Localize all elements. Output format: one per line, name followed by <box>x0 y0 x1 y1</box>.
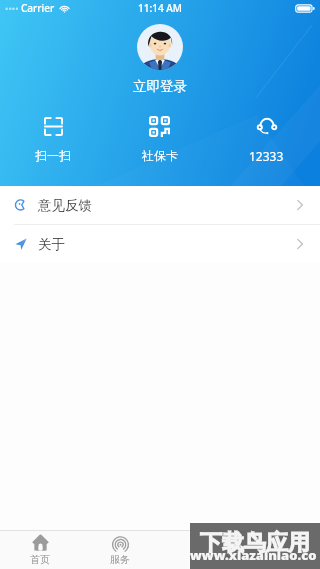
other: 社保卡 <box>149 116 170 136</box>
button[interactable]: 12333 <box>213 114 320 166</box>
staticText: •••• <box>5 2 19 14</box>
staticText: 首页 <box>30 553 50 566</box>
staticText: 服务 <box>110 553 130 566</box>
button[interactable]: 关于 <box>0 225 320 263</box>
staticText: 下载鸟应用 <box>200 529 310 557</box>
other: 扫一扫 <box>44 117 63 136</box>
button[interactable]: 扫一扫 <box>0 114 106 165</box>
staticText: 扫一扫 <box>35 148 71 163</box>
button[interactable]: 服务 <box>80 531 160 569</box>
staticText: www.xiazainiao.com <box>190 546 320 569</box>
button[interactable]: 首页 <box>0 531 80 569</box>
button[interactable]: 立即登录 <box>123 77 197 96</box>
staticText: 意见反馈 <box>38 197 92 214</box>
other: 12333 <box>257 116 277 136</box>
button[interactable]: 社保卡 <box>106 114 213 165</box>
staticText: 关于 <box>38 236 65 253</box>
staticText: 立即登录 <box>133 78 187 95</box>
button[interactable]: 意见反馈 <box>0 186 320 224</box>
staticText: Carrier <box>21 1 55 15</box>
staticText: 社保卡 <box>142 148 178 163</box>
staticText: 11:14 AM <box>138 1 182 15</box>
staticText: 12333 <box>249 148 284 164</box>
